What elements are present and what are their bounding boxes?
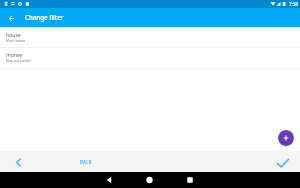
staticText: Must not contain <box>6 59 32 63</box>
button[interactable]: money <box>0 48 300 69</box>
staticText: money <box>6 52 23 59</box>
staticText: Must contain <box>6 39 26 43</box>
button[interactable]: Navigate up <box>5 12 17 24</box>
button[interactable]: BACK <box>80 159 92 165</box>
staticText: Change filter <box>25 13 64 21</box>
staticText: house <box>6 32 21 39</box>
button[interactable]: Add filter <box>278 130 294 146</box>
staticText: 7:58 <box>289 1 298 7</box>
button[interactable]: Confirm <box>276 156 290 170</box>
staticText: BACK <box>80 159 92 165</box>
button[interactable]: Previous <box>12 156 25 169</box>
button[interactable]: house <box>0 27 300 48</box>
